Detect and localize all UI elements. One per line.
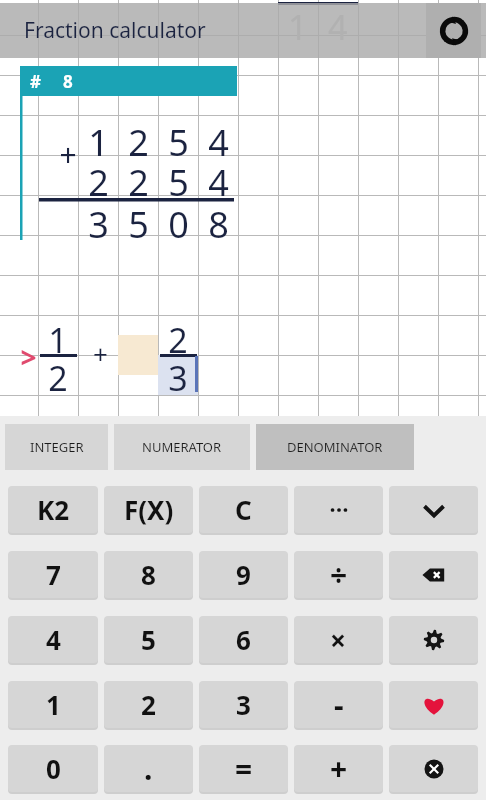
staticText: # [30, 70, 41, 93]
button[interactable]: 1 [8, 681, 98, 728]
button[interactable]: Refresh [426, 3, 481, 58]
staticText: Fraction calculator [24, 16, 206, 45]
button[interactable]: + [294, 745, 383, 792]
button[interactable]: F(X) [104, 486, 193, 533]
button[interactable]: DENOMINATOR [256, 424, 414, 470]
staticText: + [330, 748, 348, 789]
staticText: 4 [328, 4, 348, 50]
button[interactable]: Heart [389, 681, 478, 728]
staticText: 4 [46, 622, 61, 657]
button[interactable]: NUMERATOR [114, 424, 250, 470]
button[interactable]: . [104, 745, 193, 792]
button[interactable]: 9 [199, 551, 288, 598]
staticText: 2 [48, 355, 68, 397]
staticText: C [235, 492, 252, 527]
button[interactable]: 2 [104, 681, 193, 728]
staticText: 4 [208, 118, 229, 160]
button[interactable]: 7 [8, 551, 98, 598]
staticText: 7 [46, 557, 61, 592]
staticText: . [144, 748, 153, 789]
staticText: DENOMINATOR [287, 438, 383, 456]
staticText: 1 [88, 118, 109, 160]
staticText: > [20, 338, 37, 376]
button[interactable]: 0 [8, 745, 98, 792]
button[interactable]: Backspace [389, 551, 478, 598]
button[interactable]: × [294, 616, 383, 663]
staticText: 1 [46, 687, 61, 722]
staticText: × [330, 621, 347, 659]
staticText: 9 [236, 557, 251, 592]
button[interactable]: = [199, 745, 288, 792]
staticText: - [334, 684, 344, 725]
staticText: ÷ [330, 554, 348, 595]
button[interactable]: 4 [8, 616, 98, 663]
staticText: 2 [128, 158, 149, 200]
button[interactable]: INTEGER [5, 424, 108, 470]
staticText: 4 [208, 158, 229, 200]
staticText: 8 [141, 557, 156, 592]
staticText: + [93, 336, 108, 371]
button[interactable]: 5 [104, 616, 193, 663]
button[interactable]: CloseCircle [389, 745, 478, 792]
staticText: 8 [208, 200, 229, 242]
button[interactable]: C [199, 486, 288, 533]
staticText: 2 [141, 687, 156, 722]
staticText: 5 [168, 158, 189, 200]
staticText: F(X) [124, 492, 174, 527]
staticText: 2 [88, 158, 109, 200]
staticText: 3 [168, 355, 188, 397]
staticText: 2 [128, 118, 149, 160]
button[interactable]: ChevronDown [389, 486, 478, 533]
staticText: = [235, 748, 253, 789]
staticText: 8 [63, 70, 73, 93]
staticText: 2 [168, 317, 188, 359]
staticText: 3 [88, 200, 109, 242]
staticText: K2 [37, 492, 70, 527]
staticText: 1 [288, 4, 308, 50]
button[interactable]: 6 [199, 616, 288, 663]
button[interactable]: K2 [8, 486, 98, 533]
button[interactable]: Gear [389, 616, 478, 663]
staticText: NUMERATOR [142, 438, 222, 456]
staticText: 5 [128, 200, 149, 242]
button[interactable]: ÷ [294, 551, 383, 598]
staticText: + [59, 134, 77, 175]
button[interactable]: # [20, 66, 237, 96]
staticText: 5 [141, 622, 156, 657]
staticText: 3 [236, 687, 251, 722]
button[interactable]: - [294, 681, 383, 728]
staticText: 1 [48, 317, 68, 359]
button[interactable]: 8 [104, 551, 193, 598]
staticText: 0 [168, 200, 189, 242]
staticText: 6 [236, 622, 251, 657]
staticText: 5 [168, 118, 189, 160]
button[interactable]: 3 [199, 681, 288, 728]
button[interactable]: Dots [294, 486, 383, 533]
staticText: INTEGER [30, 438, 84, 456]
staticText: 0 [46, 751, 61, 786]
